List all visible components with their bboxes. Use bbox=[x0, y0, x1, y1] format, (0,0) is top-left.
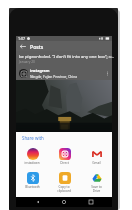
staticText: Direct bbox=[60, 161, 69, 165]
staticText: be pigeonholed. “I don’t fit into any on… bbox=[19, 54, 115, 60]
staticText: Ningde, Fujian Province, China bbox=[30, 74, 78, 78]
staticText: more bbox=[103, 54, 113, 59]
button[interactable]: instadown bbox=[16, 147, 48, 165]
staticText: Copy to clipboard bbox=[57, 185, 71, 193]
button[interactable]: Bluetooth bbox=[16, 171, 48, 189]
staticText: 1:07 bbox=[18, 36, 26, 41]
staticText: instadown bbox=[24, 161, 40, 165]
staticText: Gmail bbox=[92, 161, 101, 165]
staticText: January 20 bbox=[19, 60, 35, 64]
button[interactable]: Gmail bbox=[80, 147, 112, 165]
button[interactable]: Copy to clipboard bbox=[48, 171, 80, 193]
staticText: instagram bbox=[30, 68, 50, 73]
staticText: Save to Drive bbox=[91, 185, 102, 193]
button[interactable]: Home bbox=[59, 197, 69, 207]
button[interactable]: Recents bbox=[86, 197, 96, 207]
button[interactable]: Back bbox=[33, 197, 43, 207]
button[interactable]: Back bbox=[19, 41, 26, 51]
staticText: Bluetooth bbox=[25, 185, 40, 189]
staticText: Posts bbox=[30, 43, 44, 50]
staticText: Share with bbox=[22, 135, 44, 141]
button[interactable]: Direct bbox=[48, 147, 80, 165]
button[interactable]: instagram bbox=[16, 67, 112, 79]
button[interactable]: Save to Drive bbox=[80, 171, 112, 193]
